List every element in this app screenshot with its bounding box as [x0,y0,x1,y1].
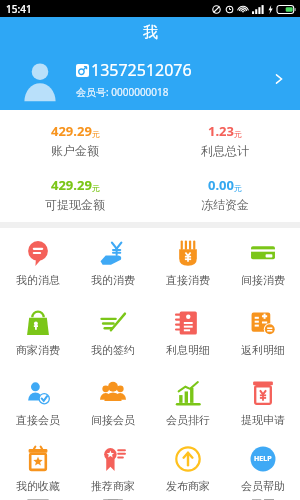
button[interactable]: 商家消费 [0,298,75,368]
staticText: 元 [234,183,242,193]
button[interactable]: 会员排行 [150,368,225,438]
staticText: 我的消费 [91,273,135,287]
button[interactable]: 直接消费 [150,228,225,298]
button[interactable]: 429.29 [0,174,150,214]
staticText: 可提现金额 [45,197,105,212]
staticText: 我的消息 [16,273,60,287]
other: 查看详情 [272,72,286,86]
staticText: 账户金额 [51,143,99,158]
button[interactable]: 间接消费 [225,228,300,298]
staticText: 间接会员 [91,413,135,427]
button[interactable]: 会员帮助 [225,438,300,500]
button[interactable]: 0.00 [150,174,300,214]
staticText: 利息总计 [201,143,249,158]
staticText: 间接消费 [241,273,285,287]
button[interactable]: 我的消息 [0,228,75,298]
button[interactable]: 13572512076 [0,47,300,110]
staticText: 直接会员 [16,413,60,427]
staticText: 我的签约 [91,343,135,357]
button[interactable]: 我的消费 [75,228,150,298]
staticText: 我的收藏 [16,479,60,493]
staticText: 会员帮助 [241,479,285,493]
staticText: 15:41 [6,2,32,16]
staticText: 会员号: 0000000018 [76,85,169,99]
staticText: 商家消费 [16,343,60,357]
staticText: 发布商家 [166,479,210,493]
button[interactable]: 我的收藏 [0,438,75,500]
button[interactable]: 返利明细 [225,298,300,368]
staticText: 13572512076 [91,59,192,81]
staticText: 冻结资金 [201,197,249,212]
staticText: 会员排行 [166,413,210,427]
button[interactable]: 直接会员 [0,368,75,438]
button[interactable]: 提现申请 [225,368,300,438]
staticText: 我 [143,23,158,42]
button[interactable]: 利息明细 [150,298,225,368]
staticText: 推荐商家 [91,479,135,493]
staticText: 429.29 [51,176,92,194]
button[interactable]: 间接会员 [75,368,150,438]
staticText: 返利明细 [241,343,285,357]
button[interactable]: 429.29 [0,120,150,160]
staticText: 1.23 [208,122,234,140]
staticText: 直接消费 [166,273,210,287]
button[interactable]: 发布商家 [150,438,225,500]
staticText: HELP [254,454,272,464]
button[interactable]: 1.23 [150,120,300,160]
staticText: 429.29 [51,122,92,140]
staticText: 提现申请 [241,413,285,427]
staticText: 利息明细 [166,343,210,357]
button[interactable]: 推荐商家 [75,438,150,500]
button[interactable]: 我的签约 [75,298,150,368]
staticText: 0.00 [208,176,234,194]
staticText: 元 [92,183,100,193]
staticText: 元 [234,129,242,139]
staticText: 元 [92,129,100,139]
